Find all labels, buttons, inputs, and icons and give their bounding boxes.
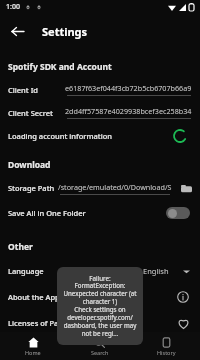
button[interactable]: Client Id [0, 78, 200, 101]
staticText: Failure: FormatException: Unexpected cha… [63, 274, 137, 338]
button[interactable]: Home [0, 332, 66, 360]
staticText: Search [91, 349, 109, 356]
staticText: /storage/emulated/0/Download/S [58, 182, 172, 192]
button[interactable]: About the App [0, 284, 200, 310]
button[interactable]: Back [0, 14, 34, 48]
button[interactable]: Storage Path [0, 176, 200, 200]
staticText: Language [8, 266, 44, 276]
staticText: Settings [42, 24, 88, 39]
staticText: About the App [8, 292, 60, 302]
staticText: Download [8, 159, 51, 171]
staticText: Home [25, 349, 41, 356]
button[interactable]: Client Secret [0, 101, 200, 124]
staticText: History [157, 349, 176, 356]
staticText: Licenses of Pack [8, 318, 67, 328]
button[interactable]: Search [66, 332, 133, 360]
button[interactable]: Choose folder [178, 180, 194, 196]
staticText: 2dd4ff57587e4029938bcef3ec258b34 [65, 106, 192, 116]
staticText: Storage Path [8, 183, 55, 193]
button[interactable]: History [133, 332, 200, 360]
button[interactable]: Licenses of Pack [0, 310, 200, 336]
staticText: Other [8, 241, 33, 253]
button[interactable]: Save All in One Folder [0, 200, 200, 226]
button[interactable]: Language [0, 258, 200, 284]
staticText: Spotify SDK and Account [8, 61, 112, 73]
staticText: 1:00 [6, 2, 20, 12]
staticText: Client Id [8, 85, 38, 95]
staticText: Client Secret [8, 108, 53, 118]
staticText: English [143, 266, 169, 276]
other: Licenses [177, 317, 190, 330]
staticText: e6187f63ef044f3cb72b5cb6707b66a9 [65, 83, 192, 93]
staticText: Save All in One Folder [8, 208, 86, 218]
other: About [177, 291, 189, 303]
staticText: Loading account information [8, 131, 113, 141]
